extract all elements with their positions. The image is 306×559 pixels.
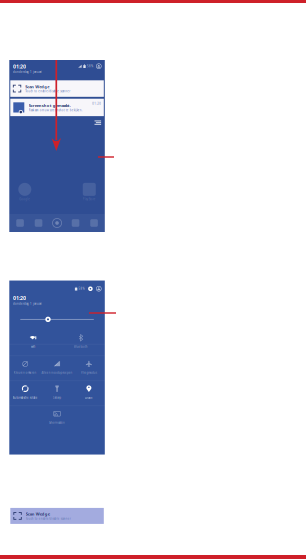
button[interactable]: Scan Wedge	[10, 508, 104, 524]
button[interactable]: Kleuren omkeren	[9, 355, 41, 380]
staticText: 01:20	[13, 294, 26, 301]
staticText: Play Store	[83, 197, 96, 201]
staticText: Alleen noodoproepen	[41, 371, 73, 374]
button[interactable]: Vliegmodus	[73, 355, 105, 380]
button[interactable]: Scherm casten	[9, 405, 105, 430]
button[interactable]: User profile	[96, 64, 101, 69]
button[interactable]: Zaklamp	[41, 380, 73, 405]
button[interactable]: Dock app 4	[69, 217, 81, 229]
staticText: Automatische rotatie	[13, 396, 38, 399]
button[interactable]: Alleen noodoproepen	[41, 355, 73, 380]
staticText: 58%	[78, 287, 84, 290]
staticText: donderdag 1 januari	[13, 70, 42, 74]
staticText: Touch to enable/disable scanner	[26, 517, 71, 520]
button[interactable]: Locatie	[73, 380, 105, 405]
button[interactable]: Dock app 2	[32, 217, 44, 229]
staticText: Scan Wedge	[25, 84, 49, 89]
button[interactable]: Google	[18, 183, 31, 201]
button[interactable]: Dock app 1	[14, 217, 26, 229]
staticText: Bluetooth	[74, 345, 88, 348]
button[interactable]: wifi	[9, 329, 57, 355]
button[interactable]: Play Store	[83, 183, 96, 201]
button[interactable]: Settings	[88, 286, 93, 291]
staticText: Locatie	[85, 396, 93, 399]
staticText: 58%	[87, 64, 93, 68]
button[interactable]: Scan Wedge	[10, 80, 104, 97]
staticText: Vliegmodus	[81, 371, 97, 374]
button[interactable]: Dock app 5	[88, 217, 100, 229]
button[interactable]: Bluetooth	[57, 329, 105, 355]
staticText: donderdag 1 januari	[13, 302, 42, 305]
staticText: Touch to enable/disable scanner	[25, 90, 70, 93]
button[interactable]: Screenshot gemaakt.	[10, 99, 104, 116]
staticText: Kleuren omkeren	[14, 371, 37, 374]
staticText: Screenshot gemaakt.	[29, 103, 71, 108]
button[interactable]: Automatische rotatie	[9, 380, 41, 405]
staticText: wifi	[31, 345, 35, 348]
staticText: Zaklamp	[52, 396, 61, 399]
staticText: 01:20	[92, 102, 101, 105]
button[interactable]: Clear all notifications	[93, 119, 102, 126]
staticText: Scherm casten	[49, 421, 65, 424]
staticText: Scan Wedge	[26, 511, 50, 517]
button[interactable]: User profile	[96, 286, 101, 291]
staticText: Raak aan om uw screenshot te bekijken.	[29, 108, 83, 112]
button[interactable]: Dock app 3	[51, 217, 63, 229]
staticText: Google	[19, 197, 30, 201]
staticText: 01:20	[13, 63, 26, 70]
